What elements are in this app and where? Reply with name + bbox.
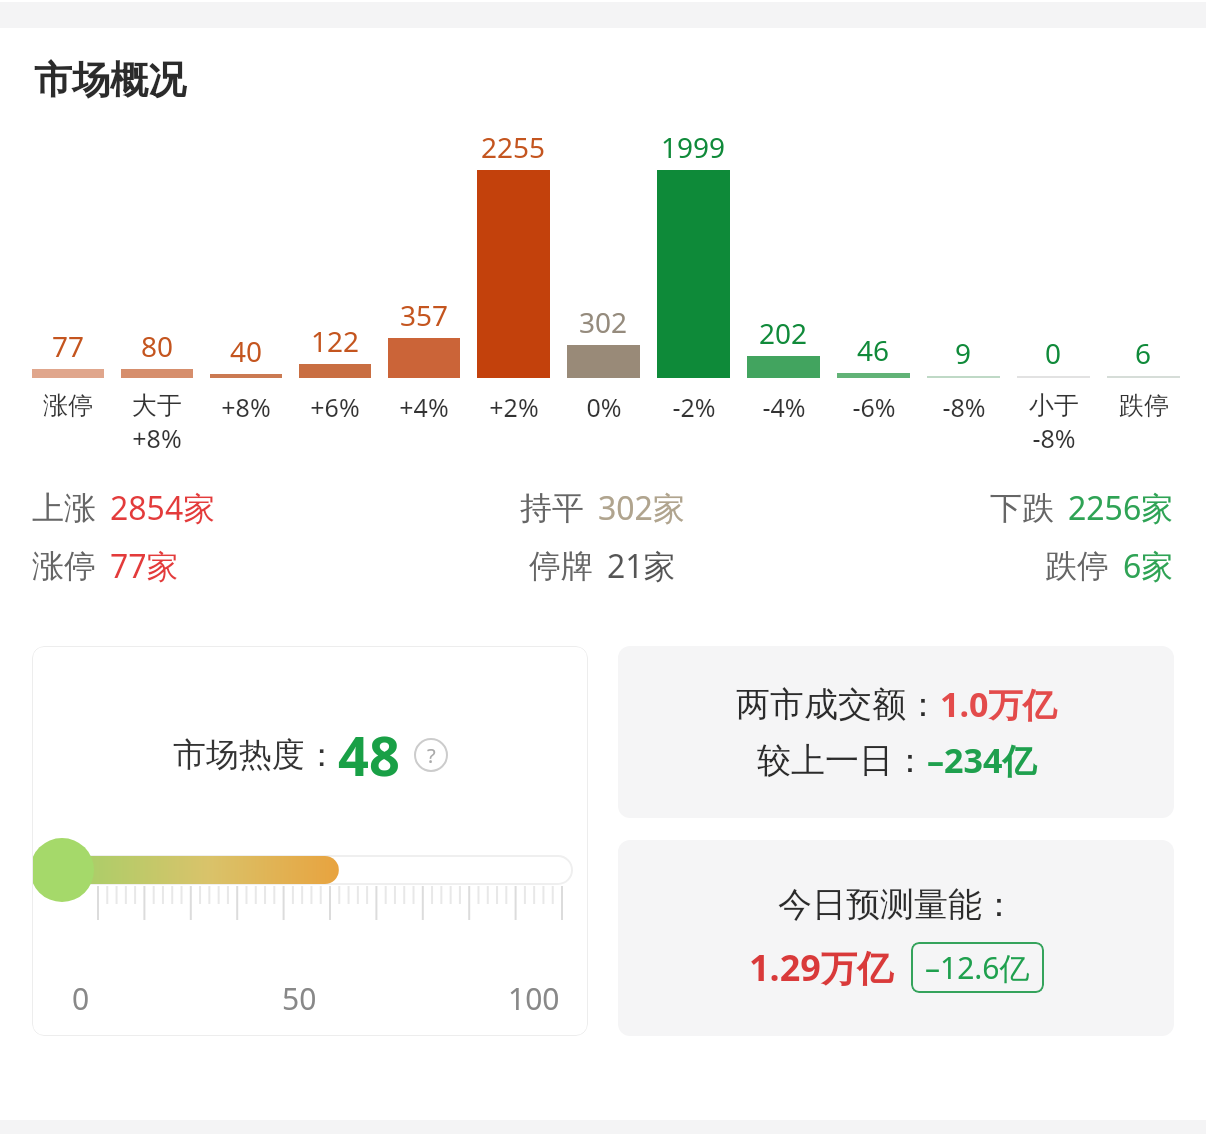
staticText: 上涨 [32, 488, 96, 528]
button[interactable]: 80 [121, 128, 193, 455]
button[interactable]: 市场热度： [32, 646, 588, 1036]
staticText: 50 [282, 978, 317, 1019]
staticText: 1999 [661, 128, 726, 166]
staticText: 6家 [1123, 544, 1174, 588]
staticText: 0 [1045, 334, 1062, 372]
button[interactable]: 202 [747, 128, 820, 424]
staticText: 6 [1135, 334, 1152, 372]
staticText: 0 [72, 978, 90, 1019]
staticText: 357 [400, 296, 449, 334]
button[interactable]: 涨停 [32, 544, 412, 588]
staticText: 停牌 [529, 546, 593, 586]
staticText: -4% [762, 390, 806, 424]
button[interactable]: 两市成交额： [618, 646, 1174, 818]
staticText: +2% [489, 390, 539, 424]
button[interactable]: 停牌 [412, 544, 793, 588]
staticText: 1.0万亿 [940, 681, 1057, 727]
staticText: 大于 [132, 390, 182, 421]
button[interactable]: 2255 [477, 128, 550, 424]
staticText: 下跌 [990, 488, 1054, 528]
button[interactable]: 1999 [657, 128, 730, 424]
button[interactable]: 77 [32, 128, 104, 421]
staticText: 77家 [110, 544, 179, 588]
staticText: 市场热度： [173, 734, 338, 776]
button[interactable]: 46 [837, 128, 910, 424]
staticText: -8% [1032, 421, 1076, 455]
staticText: 46 [857, 331, 890, 369]
staticText: 122 [311, 322, 360, 360]
staticText: -2% [672, 390, 716, 424]
button[interactable]: 帮助 [414, 738, 448, 772]
staticText: +8% [221, 390, 271, 424]
staticText: -6% [852, 390, 896, 424]
staticText: 2854家 [110, 486, 216, 530]
button[interactable]: 357 [388, 128, 460, 424]
button[interactable]: 122 [299, 128, 371, 424]
button[interactable]: 40 [210, 128, 282, 424]
staticText: 100 [508, 978, 560, 1019]
staticText: 跌停 [1119, 390, 1169, 421]
staticText: +8% [132, 421, 182, 455]
staticText: 40 [230, 332, 263, 370]
staticText: 市场概况 [34, 56, 186, 104]
staticText: 两市成交额： [736, 683, 940, 726]
staticText: +6% [310, 390, 360, 424]
staticText: 小于 [1029, 390, 1079, 421]
button[interactable]: 跌停 [793, 544, 1174, 588]
staticText: –234亿 [927, 737, 1037, 783]
staticText: 1.29万亿 [749, 943, 893, 992]
button[interactable]: 上涨 [32, 486, 412, 530]
button[interactable]: 下跌 [793, 486, 1174, 530]
button[interactable]: 今日预测量能： [618, 840, 1174, 1036]
staticText: 9 [955, 334, 972, 372]
staticText: 0% [586, 390, 622, 424]
staticText: 21家 [607, 544, 676, 588]
staticText: 2256家 [1068, 486, 1174, 530]
staticText: 涨停 [43, 390, 93, 421]
staticText: –12.6亿 [925, 947, 1030, 988]
staticText: 涨停 [32, 546, 96, 586]
button[interactable]: –12.6亿 [925, 947, 1030, 988]
staticText: 跌停 [1045, 546, 1109, 586]
staticText: 80 [141, 327, 174, 365]
button[interactable]: 9 [927, 128, 1000, 424]
staticText: 持平 [520, 488, 584, 528]
staticText: 202 [759, 314, 808, 352]
button[interactable]: 持平 [412, 486, 793, 530]
staticText: 较上一日： [757, 739, 927, 782]
staticText: 2255 [481, 128, 546, 166]
staticText: ? [427, 742, 436, 769]
button[interactable]: 302 [567, 128, 640, 424]
staticText: 302 [579, 303, 628, 341]
staticText: +4% [399, 390, 449, 424]
staticText: 302家 [598, 486, 685, 530]
staticText: -8% [942, 390, 986, 424]
staticText: 今日预测量能： [778, 883, 1016, 926]
staticText: 48 [338, 718, 400, 792]
staticText: 77 [52, 327, 85, 365]
button[interactable]: 6 [1107, 128, 1180, 421]
button[interactable]: 0 [1017, 128, 1090, 455]
